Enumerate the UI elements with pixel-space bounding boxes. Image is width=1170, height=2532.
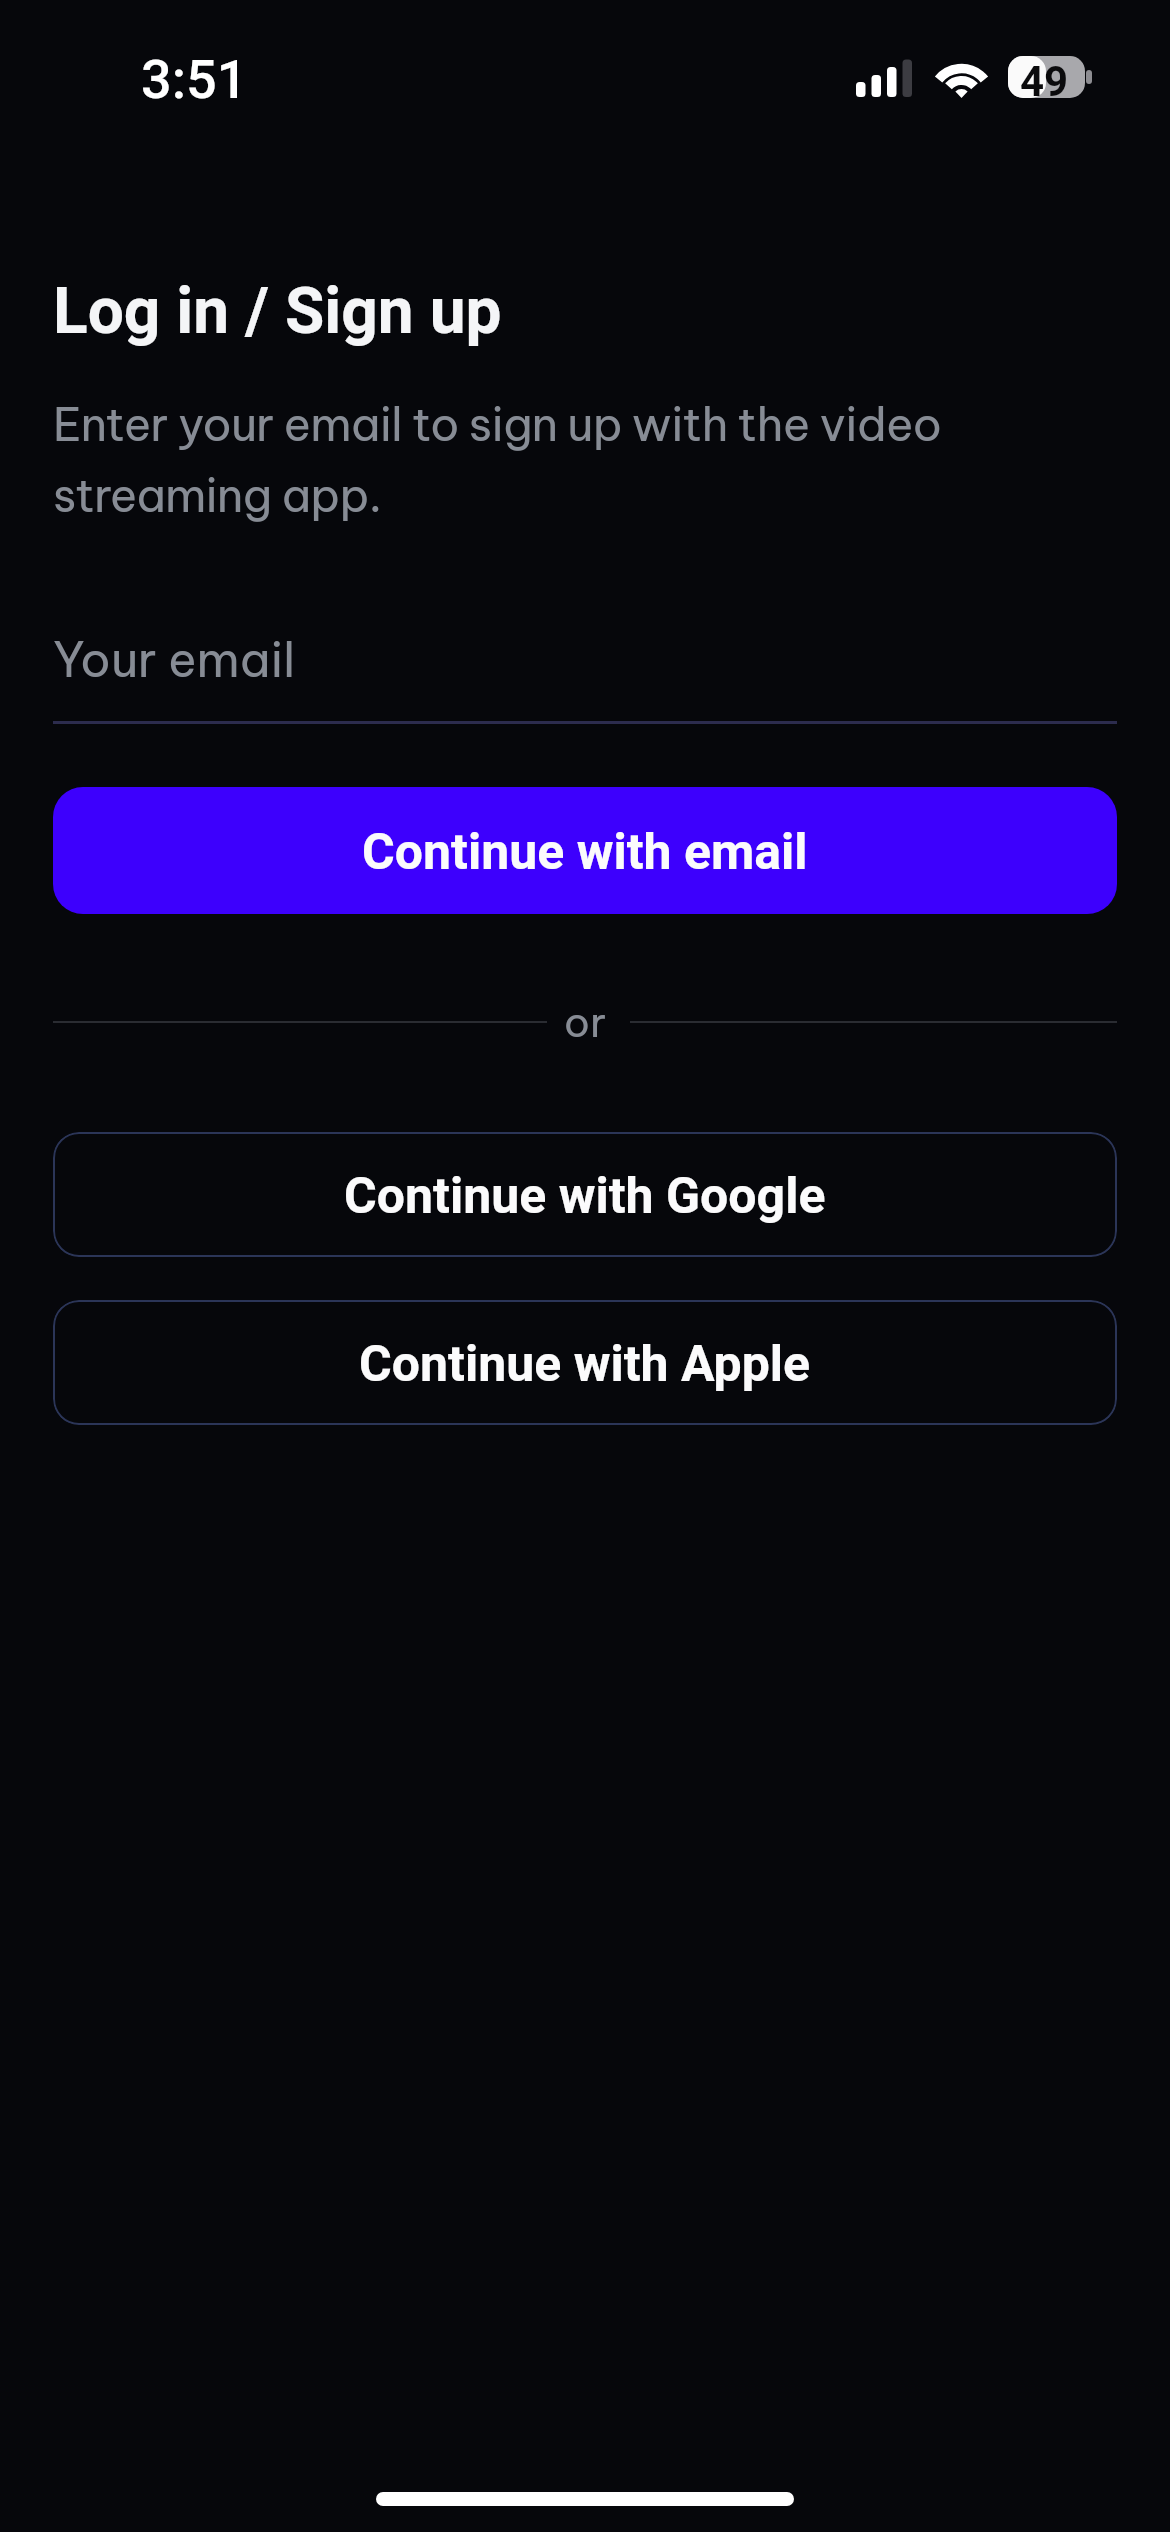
staticText: 3:51 bbox=[141, 48, 248, 111]
other: Battery 49 percent bbox=[1008, 56, 1092, 105]
button[interactable]: Continue with Google bbox=[53, 1132, 1117, 1257]
staticText: Continue with email bbox=[362, 823, 808, 882]
staticText: 49 bbox=[1020, 57, 1069, 106]
staticText: Continue with Google bbox=[344, 1167, 826, 1226]
staticText: Log in / Sign up bbox=[53, 274, 502, 349]
button[interactable]: Your email bbox=[53, 618, 1117, 724]
staticText: Enter your email to sign up with the vid… bbox=[53, 395, 1013, 524]
button[interactable]: Continue with Apple bbox=[53, 1300, 1117, 1425]
staticText: Your email bbox=[53, 629, 296, 690]
other: Wi-Fi connected bbox=[936, 59, 987, 97]
button[interactable]: Continue with email bbox=[53, 787, 1117, 914]
staticText: or bbox=[0, 996, 1170, 1048]
other: Cellular signal strength bbox=[856, 56, 916, 97]
staticText: Continue with Apple bbox=[359, 1335, 811, 1394]
